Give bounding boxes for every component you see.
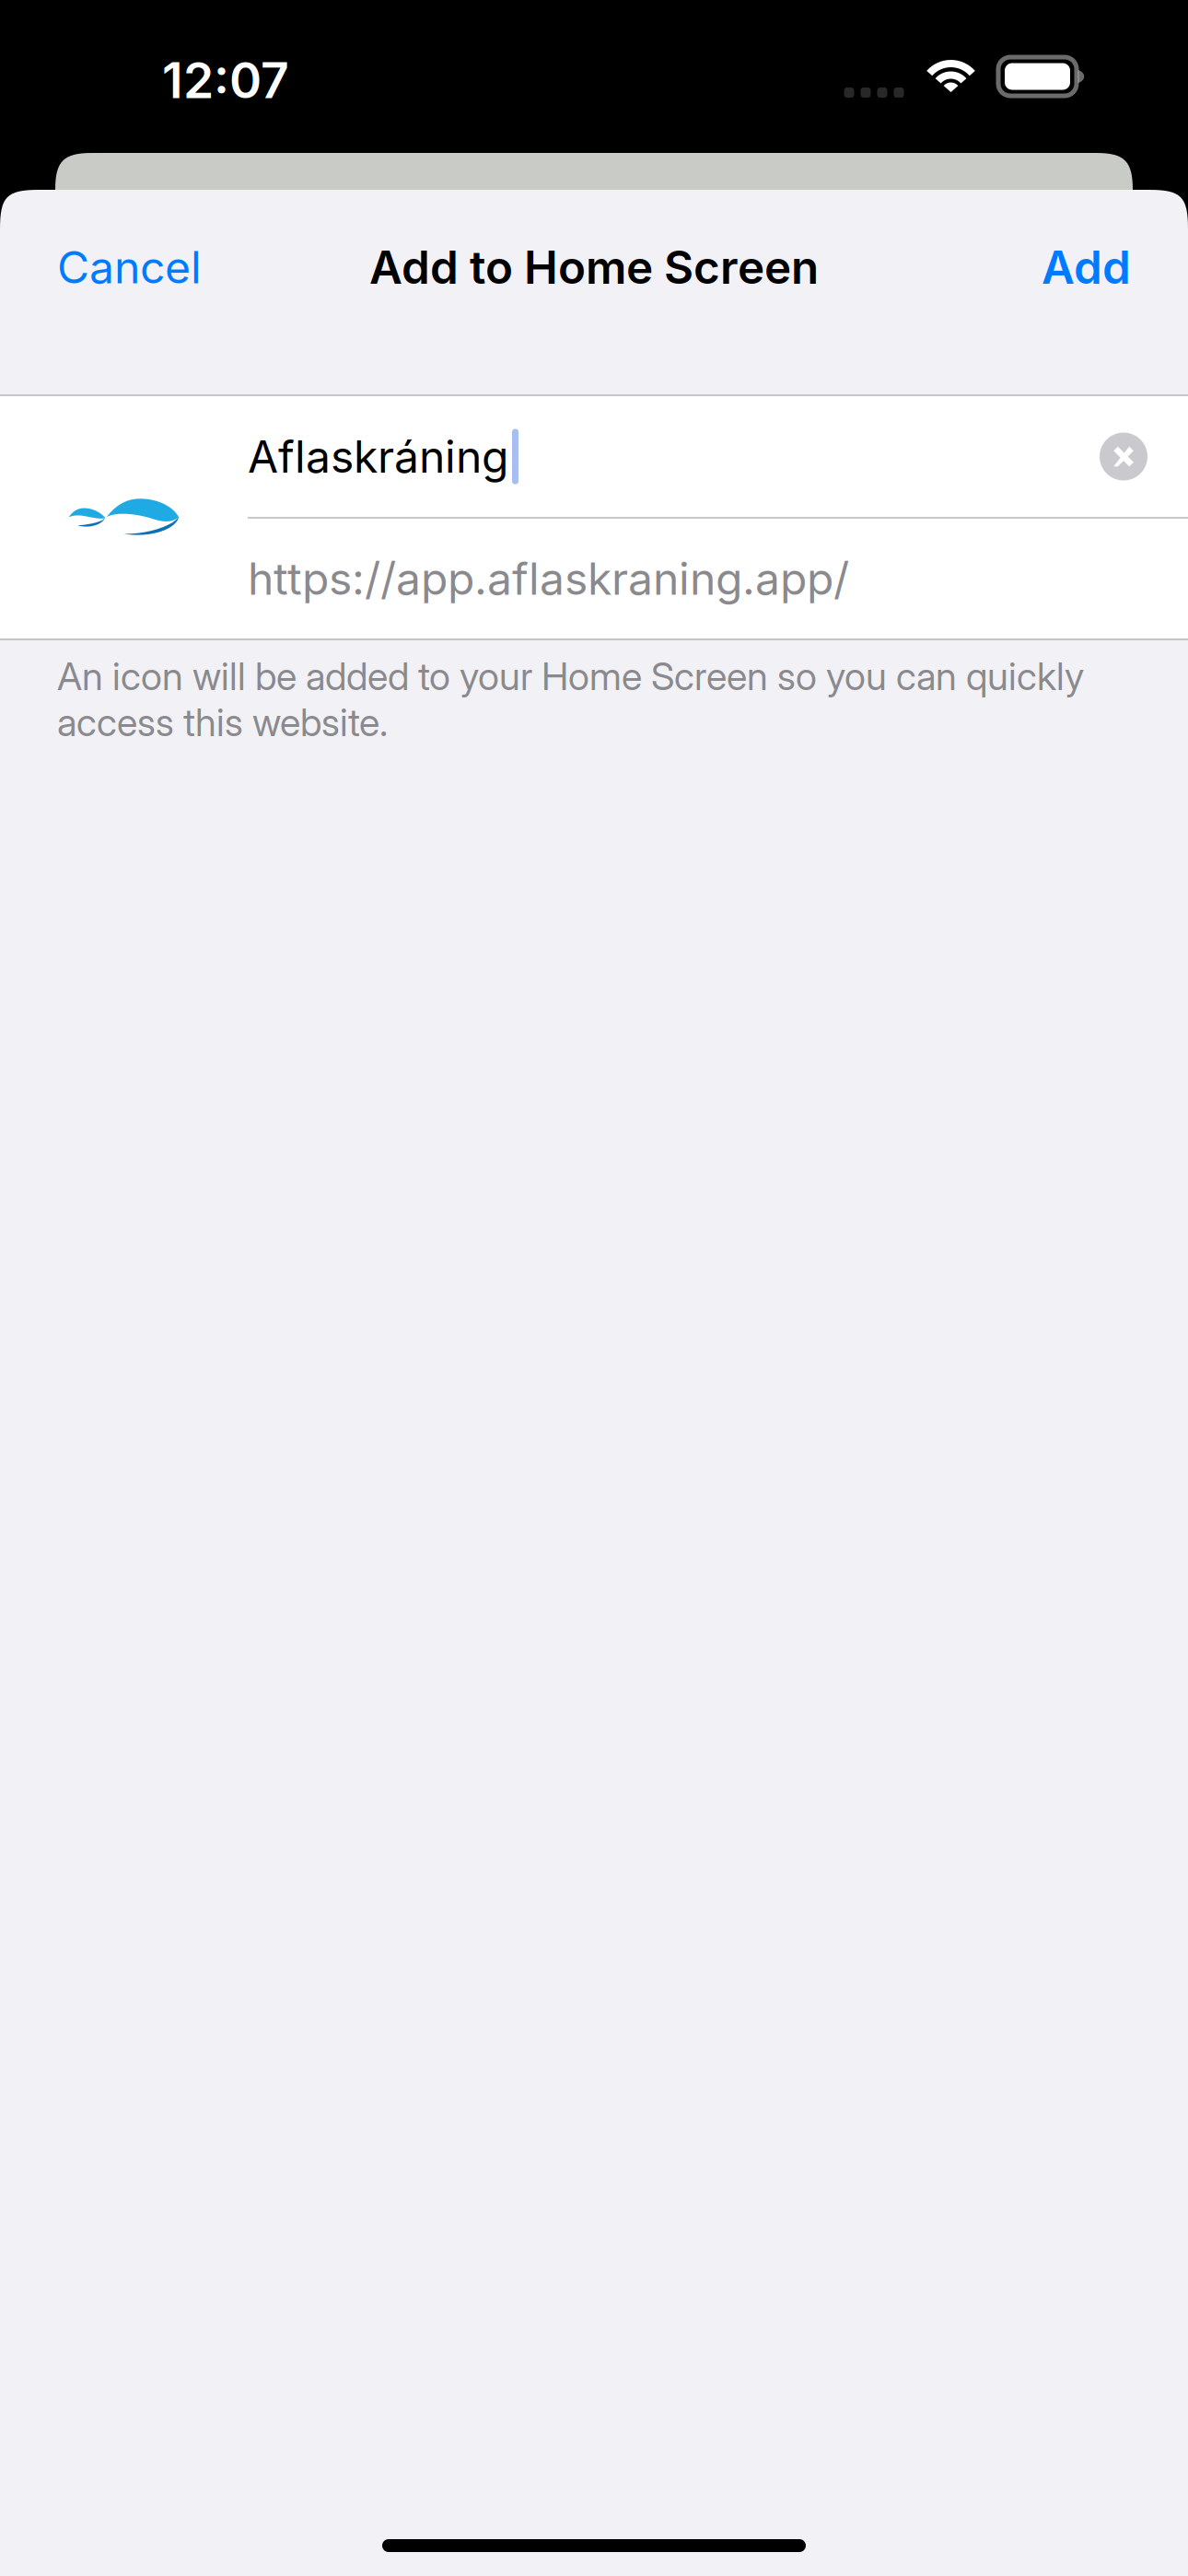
staticText: Cancel bbox=[57, 240, 202, 294]
staticText: Aflaskráning bbox=[248, 430, 508, 483]
button[interactable]: Clear text bbox=[1079, 412, 1188, 501]
button[interactable]: Aflaskráning bbox=[248, 396, 1188, 517]
staticText: Add to Home Screen bbox=[369, 240, 819, 295]
button[interactable]: https://app.aflaskraning.app/ bbox=[248, 519, 1188, 638]
button[interactable]: Add bbox=[1029, 207, 1144, 327]
button[interactable]: Cancel bbox=[44, 208, 215, 326]
staticText: Add bbox=[1042, 240, 1131, 295]
staticText: 12:07 bbox=[162, 50, 289, 110]
staticText: https://app.aflaskraning.app/ bbox=[248, 552, 849, 605]
staticText: An icon will be added to your Home Scree… bbox=[57, 653, 1084, 745]
